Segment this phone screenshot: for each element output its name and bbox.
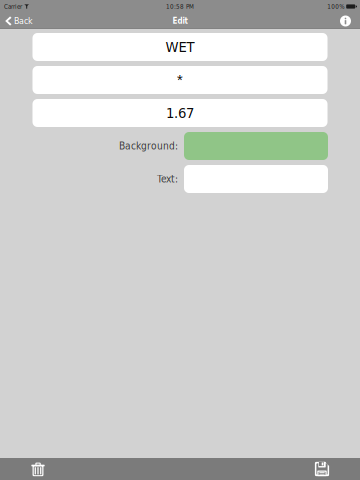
staticText: *	[177, 72, 183, 88]
staticText: Back	[14, 16, 33, 26]
button[interactable]: 1.67	[32, 99, 327, 127]
staticText: 1.67	[166, 104, 194, 122]
staticText: WET	[165, 38, 194, 56]
staticText: Carrier	[4, 3, 22, 10]
staticText: 100%	[327, 3, 344, 10]
staticText: Edit	[172, 16, 187, 26]
button[interactable]: Save	[307, 458, 337, 480]
button[interactable]: Back	[0, 13, 39, 29]
staticText: Text:	[157, 173, 178, 185]
button[interactable]: *	[32, 66, 327, 94]
staticText: 10:58 PM	[166, 3, 194, 10]
button[interactable]: WET	[32, 33, 327, 61]
staticText: Background:	[119, 140, 178, 152]
button[interactable]: Background:	[184, 132, 328, 160]
button[interactable]: Info	[336, 13, 360, 28]
button[interactable]: Delete	[23, 458, 53, 480]
